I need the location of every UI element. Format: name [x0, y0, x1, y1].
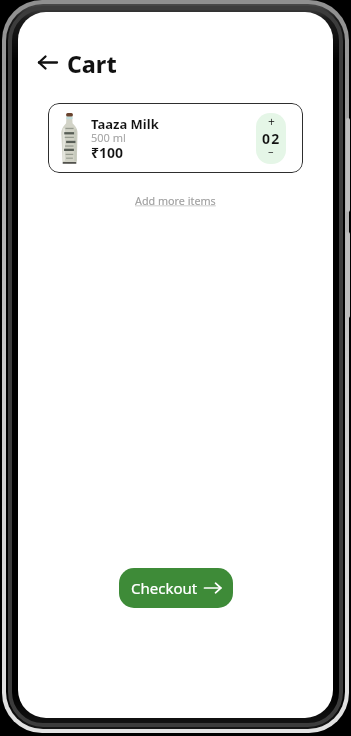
staticText: Checkout [131, 578, 198, 598]
staticText: 500 ml [91, 130, 126, 145]
staticText: + [268, 113, 275, 128]
button[interactable]: Add more items [135, 193, 216, 208]
staticText: Cart [67, 48, 117, 76]
button[interactable]: Taaza Milk [48, 103, 303, 173]
button[interactable]: – [256, 143, 286, 158]
staticText: 02 [262, 129, 281, 148]
staticText: ₹100 [91, 143, 124, 162]
button[interactable]: + [256, 113, 286, 128]
staticText: Taaza Milk [91, 115, 159, 133]
button[interactable]: Checkout [119, 568, 233, 608]
button[interactable]: Cart [38, 48, 117, 76]
staticText: – [268, 143, 274, 158]
